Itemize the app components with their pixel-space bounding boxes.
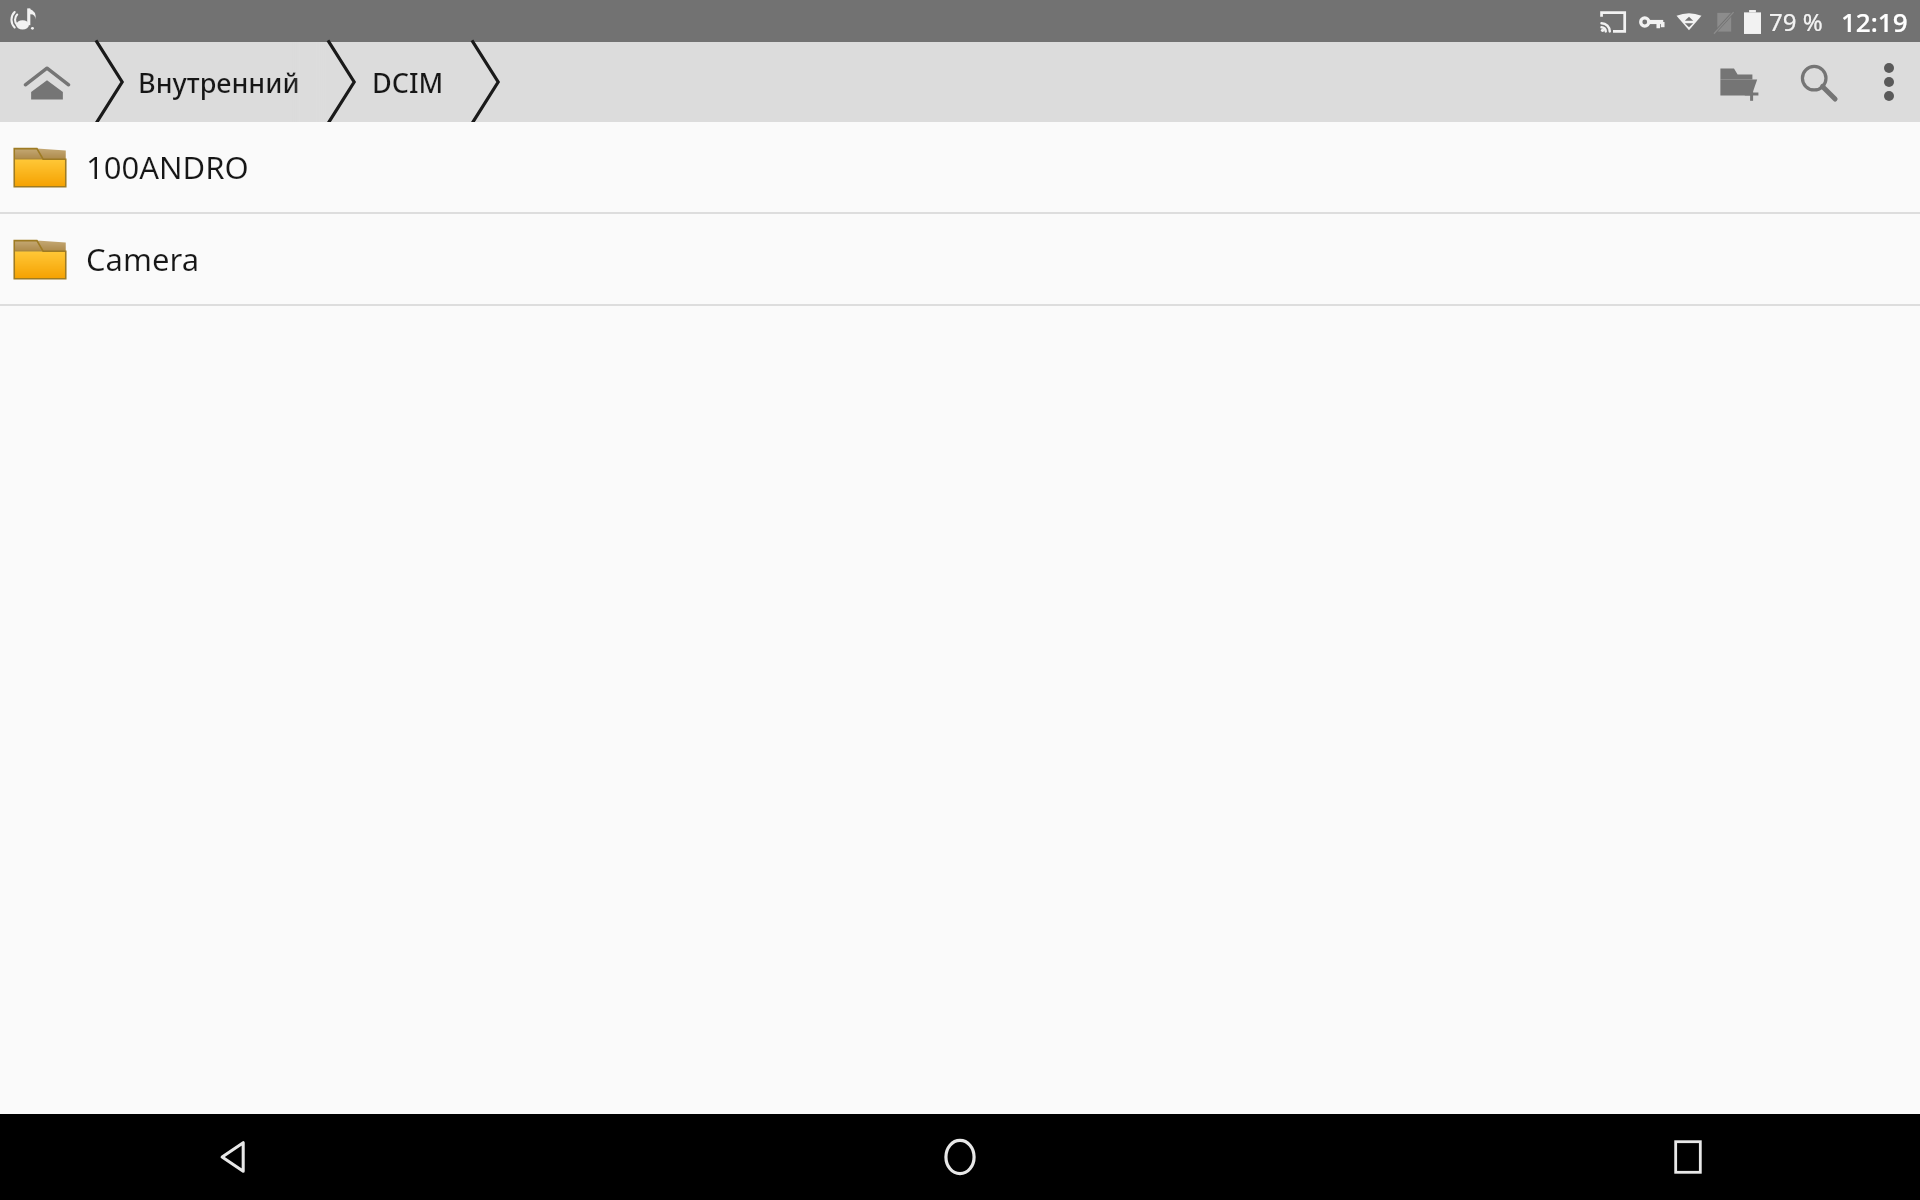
button[interactable]: Внутренний об: [126, 42, 326, 122]
button[interactable]: Camera: [0, 214, 1920, 304]
staticText: DCIM: [372, 64, 444, 101]
button[interactable]: Recent apps: [1280, 1114, 1920, 1200]
staticText: 100ANDRO: [86, 146, 249, 188]
button[interactable]: Home: [640, 1114, 1280, 1200]
button[interactable]: 100ANDRO: [0, 122, 1920, 212]
button[interactable]: Search: [1778, 42, 1858, 122]
button[interactable]: Home: [0, 42, 94, 122]
button[interactable]: More options: [1858, 42, 1920, 122]
staticText: 79 %: [1769, 5, 1823, 38]
button[interactable]: New folder: [1698, 42, 1778, 122]
staticText: Camera: [86, 238, 200, 280]
button[interactable]: Back: [0, 1114, 640, 1200]
staticText: 12:19: [1841, 4, 1908, 39]
button[interactable]: DCIM: [358, 42, 470, 122]
staticText: Внутренний об: [138, 64, 326, 101]
